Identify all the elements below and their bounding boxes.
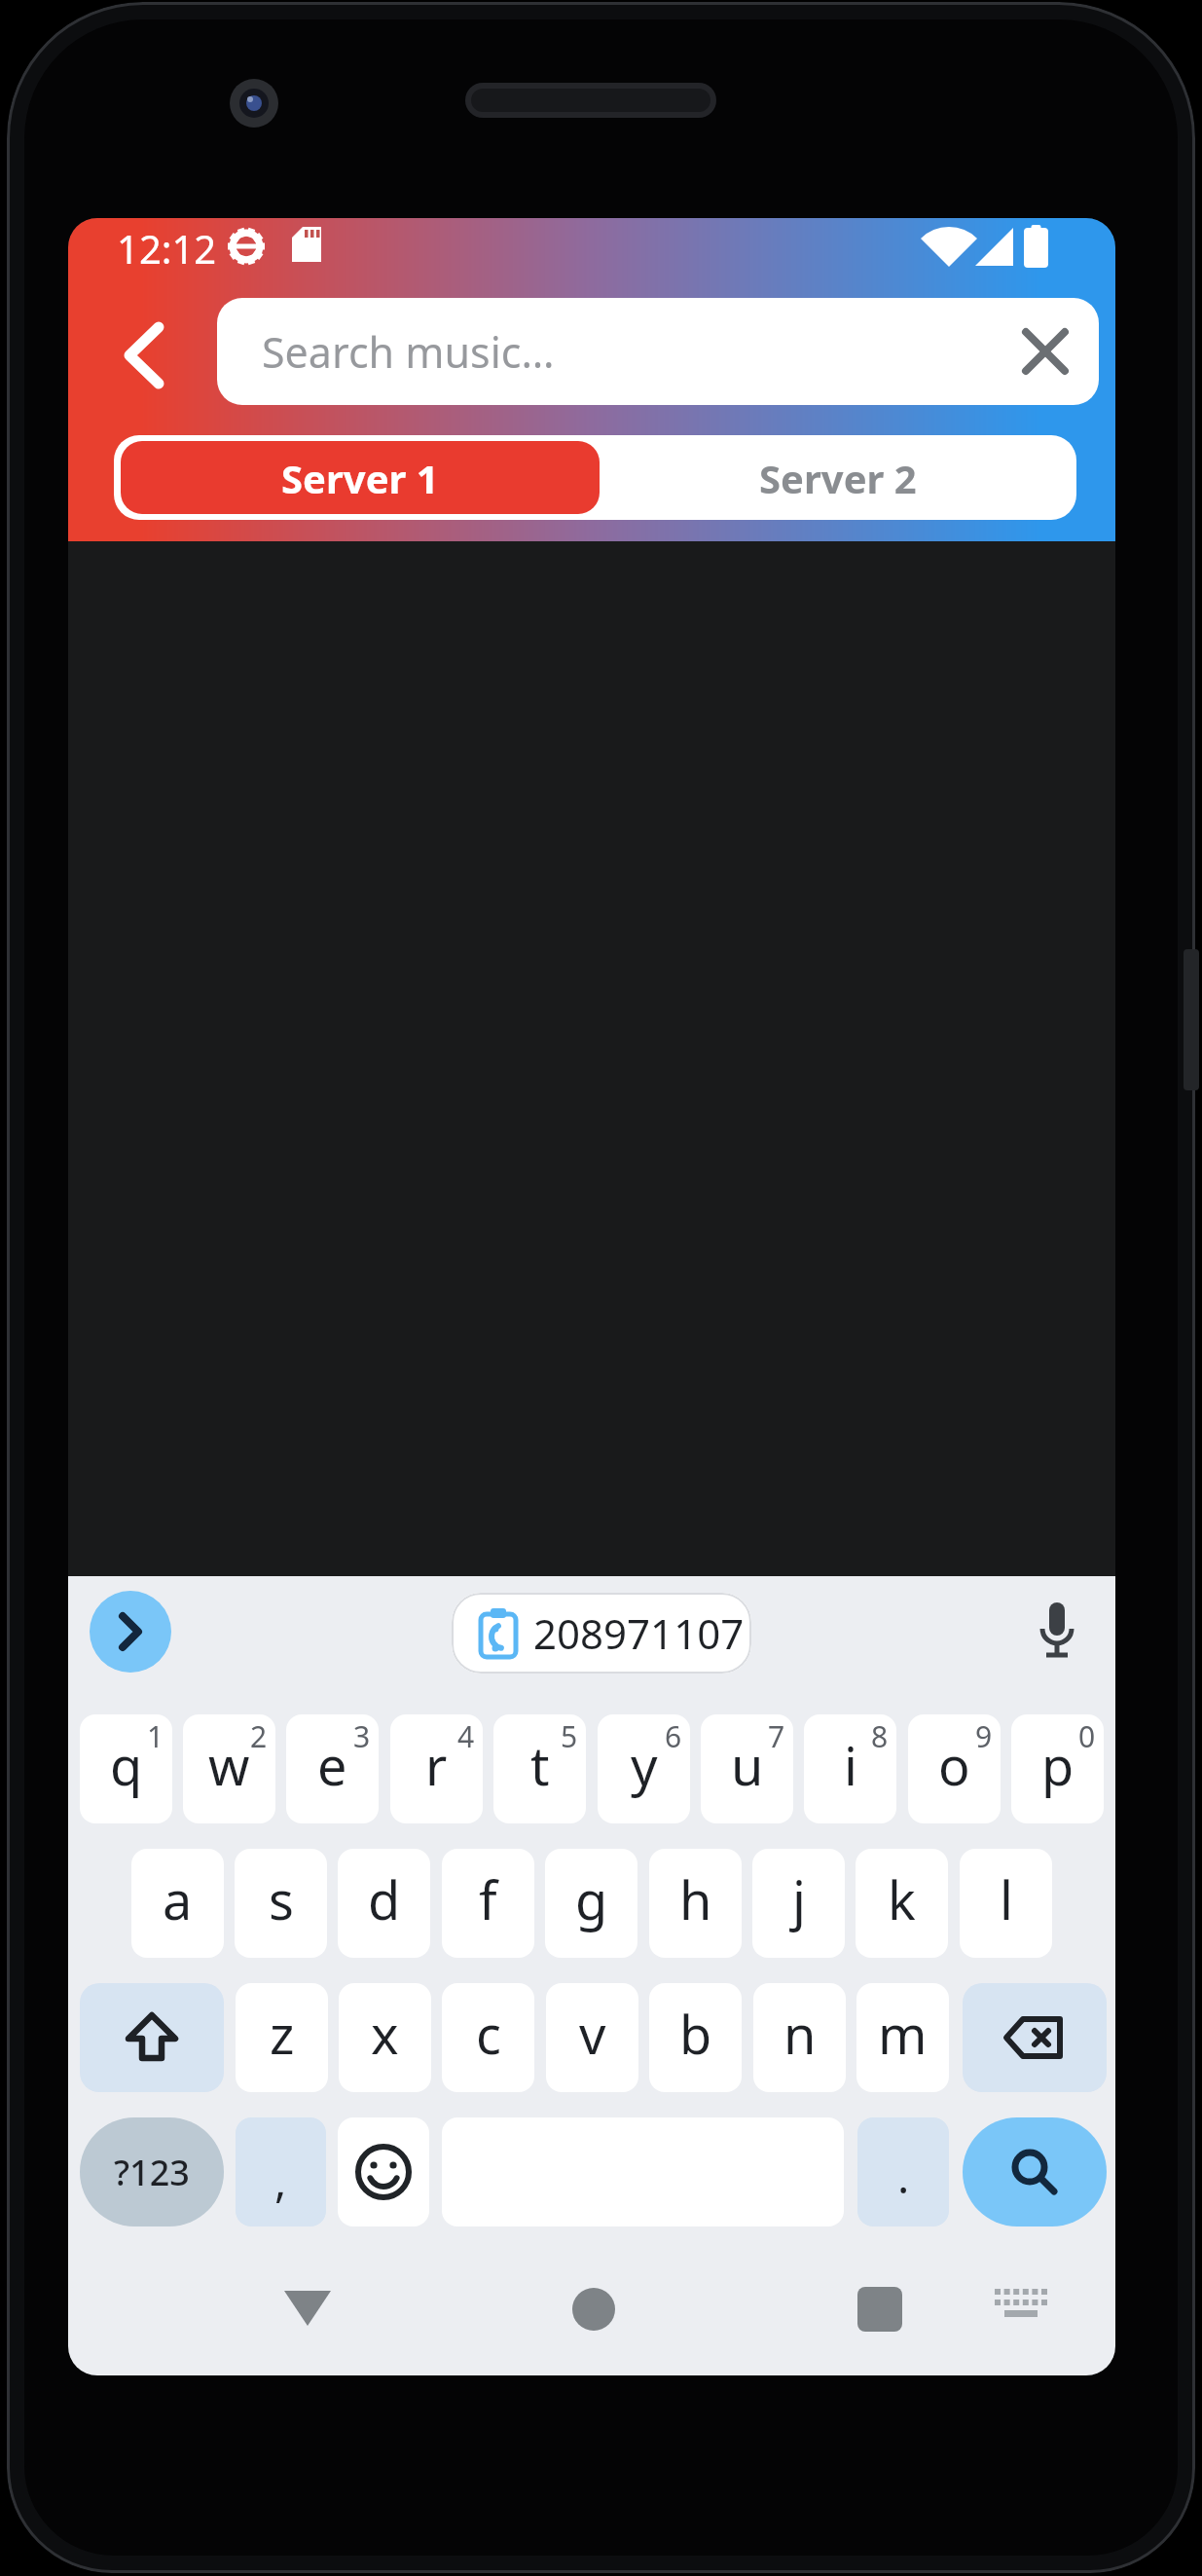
staticText: a xyxy=(163,1863,193,1935)
button[interactable]: ?123 xyxy=(80,2117,224,2226)
staticText: Server 2 xyxy=(759,452,917,504)
button[interactable]: u xyxy=(701,1714,793,1823)
button[interactable]: v xyxy=(546,1983,638,2092)
staticText: 7 xyxy=(768,1716,785,1756)
button[interactable] xyxy=(80,1983,224,2092)
staticText: c xyxy=(476,1998,501,2070)
staticText: Server 1 xyxy=(281,452,439,504)
button[interactable]: n xyxy=(753,1983,846,2092)
button[interactable] xyxy=(993,2282,1051,2337)
button[interactable] xyxy=(280,2282,335,2337)
staticText: r xyxy=(425,1729,448,1801)
staticText: t xyxy=(530,1729,550,1801)
button[interactable]: Server 2 xyxy=(600,435,1076,520)
staticText: w xyxy=(208,1729,250,1801)
staticText: . xyxy=(897,2146,910,2207)
staticText: z xyxy=(270,1998,295,2070)
button[interactable]: j xyxy=(752,1849,845,1958)
button[interactable]: y xyxy=(598,1714,690,1823)
staticText: q xyxy=(110,1729,143,1801)
staticText: Search music… xyxy=(262,323,555,381)
button[interactable] xyxy=(963,1983,1107,2092)
staticText: u xyxy=(731,1729,764,1801)
button[interactable]: x xyxy=(339,1983,431,2092)
staticText: v xyxy=(579,1998,606,2070)
staticText: x xyxy=(371,1998,399,2070)
button[interactable]: b xyxy=(649,1983,742,2092)
button[interactable] xyxy=(107,318,180,391)
button[interactable]: h xyxy=(649,1849,742,1958)
staticText: 4 xyxy=(457,1716,475,1756)
button[interactable] xyxy=(963,2117,1107,2226)
staticText: 9 xyxy=(975,1716,993,1756)
staticText: n xyxy=(783,1998,817,2070)
button[interactable]: f xyxy=(442,1849,534,1958)
button[interactable]: s xyxy=(235,1849,327,1958)
staticText: y xyxy=(631,1729,658,1801)
staticText: f xyxy=(479,1863,497,1935)
button[interactable] xyxy=(1027,1596,1087,1670)
button[interactable]: k xyxy=(856,1849,948,1958)
button[interactable] xyxy=(853,2282,907,2337)
staticText: l xyxy=(1000,1863,1013,1935)
button[interactable]: . xyxy=(857,2117,949,2226)
button[interactable]: 208971107 xyxy=(452,1593,751,1674)
staticText: h xyxy=(679,1863,712,1935)
button[interactable]: i xyxy=(804,1714,896,1823)
staticText: 208971107 xyxy=(533,1605,745,1661)
staticText: s xyxy=(269,1863,294,1935)
button[interactable]: p xyxy=(1011,1714,1104,1823)
staticText: 12:12 xyxy=(117,222,217,273)
staticText: i xyxy=(844,1729,857,1801)
staticText: 2 xyxy=(250,1716,268,1756)
button[interactable] xyxy=(90,1591,171,1673)
staticText: 1 xyxy=(147,1716,164,1756)
staticText: 6 xyxy=(665,1716,682,1756)
button[interactable]: r xyxy=(390,1714,483,1823)
button[interactable]: a xyxy=(131,1849,224,1958)
staticText: e xyxy=(317,1729,347,1801)
button[interactable]: m xyxy=(856,1983,949,2092)
button[interactable]: Search music… xyxy=(217,298,1099,405)
button[interactable]: c xyxy=(442,1983,534,2092)
button[interactable]: t xyxy=(493,1714,586,1823)
staticText: k xyxy=(888,1863,916,1935)
button[interactable] xyxy=(566,2282,621,2337)
staticText: 5 xyxy=(561,1716,578,1756)
button[interactable]: Server 1 xyxy=(121,441,600,514)
staticText: p xyxy=(1041,1729,1075,1801)
button[interactable]: , xyxy=(236,2117,326,2226)
button[interactable]: e xyxy=(286,1714,379,1823)
button[interactable]: l xyxy=(960,1849,1052,1958)
button[interactable]: o xyxy=(908,1714,1001,1823)
staticText: g xyxy=(575,1863,608,1935)
staticText: , xyxy=(274,2150,287,2211)
staticText: j xyxy=(792,1863,806,1935)
button[interactable]: w xyxy=(183,1714,275,1823)
button[interactable]: d xyxy=(338,1849,430,1958)
staticText: ?123 xyxy=(114,2149,190,2196)
button[interactable]: q xyxy=(80,1714,172,1823)
staticText: b xyxy=(679,1998,712,2070)
staticText: 0 xyxy=(1078,1716,1096,1756)
staticText: o xyxy=(938,1729,970,1801)
staticText: 8 xyxy=(871,1716,889,1756)
staticText: m xyxy=(878,1998,928,2070)
staticText: d xyxy=(368,1863,401,1935)
button[interactable] xyxy=(338,2117,429,2226)
button[interactable]: g xyxy=(545,1849,637,1958)
button[interactable] xyxy=(1015,321,1075,382)
staticText: 3 xyxy=(353,1716,371,1756)
button[interactable]: z xyxy=(236,1983,328,2092)
